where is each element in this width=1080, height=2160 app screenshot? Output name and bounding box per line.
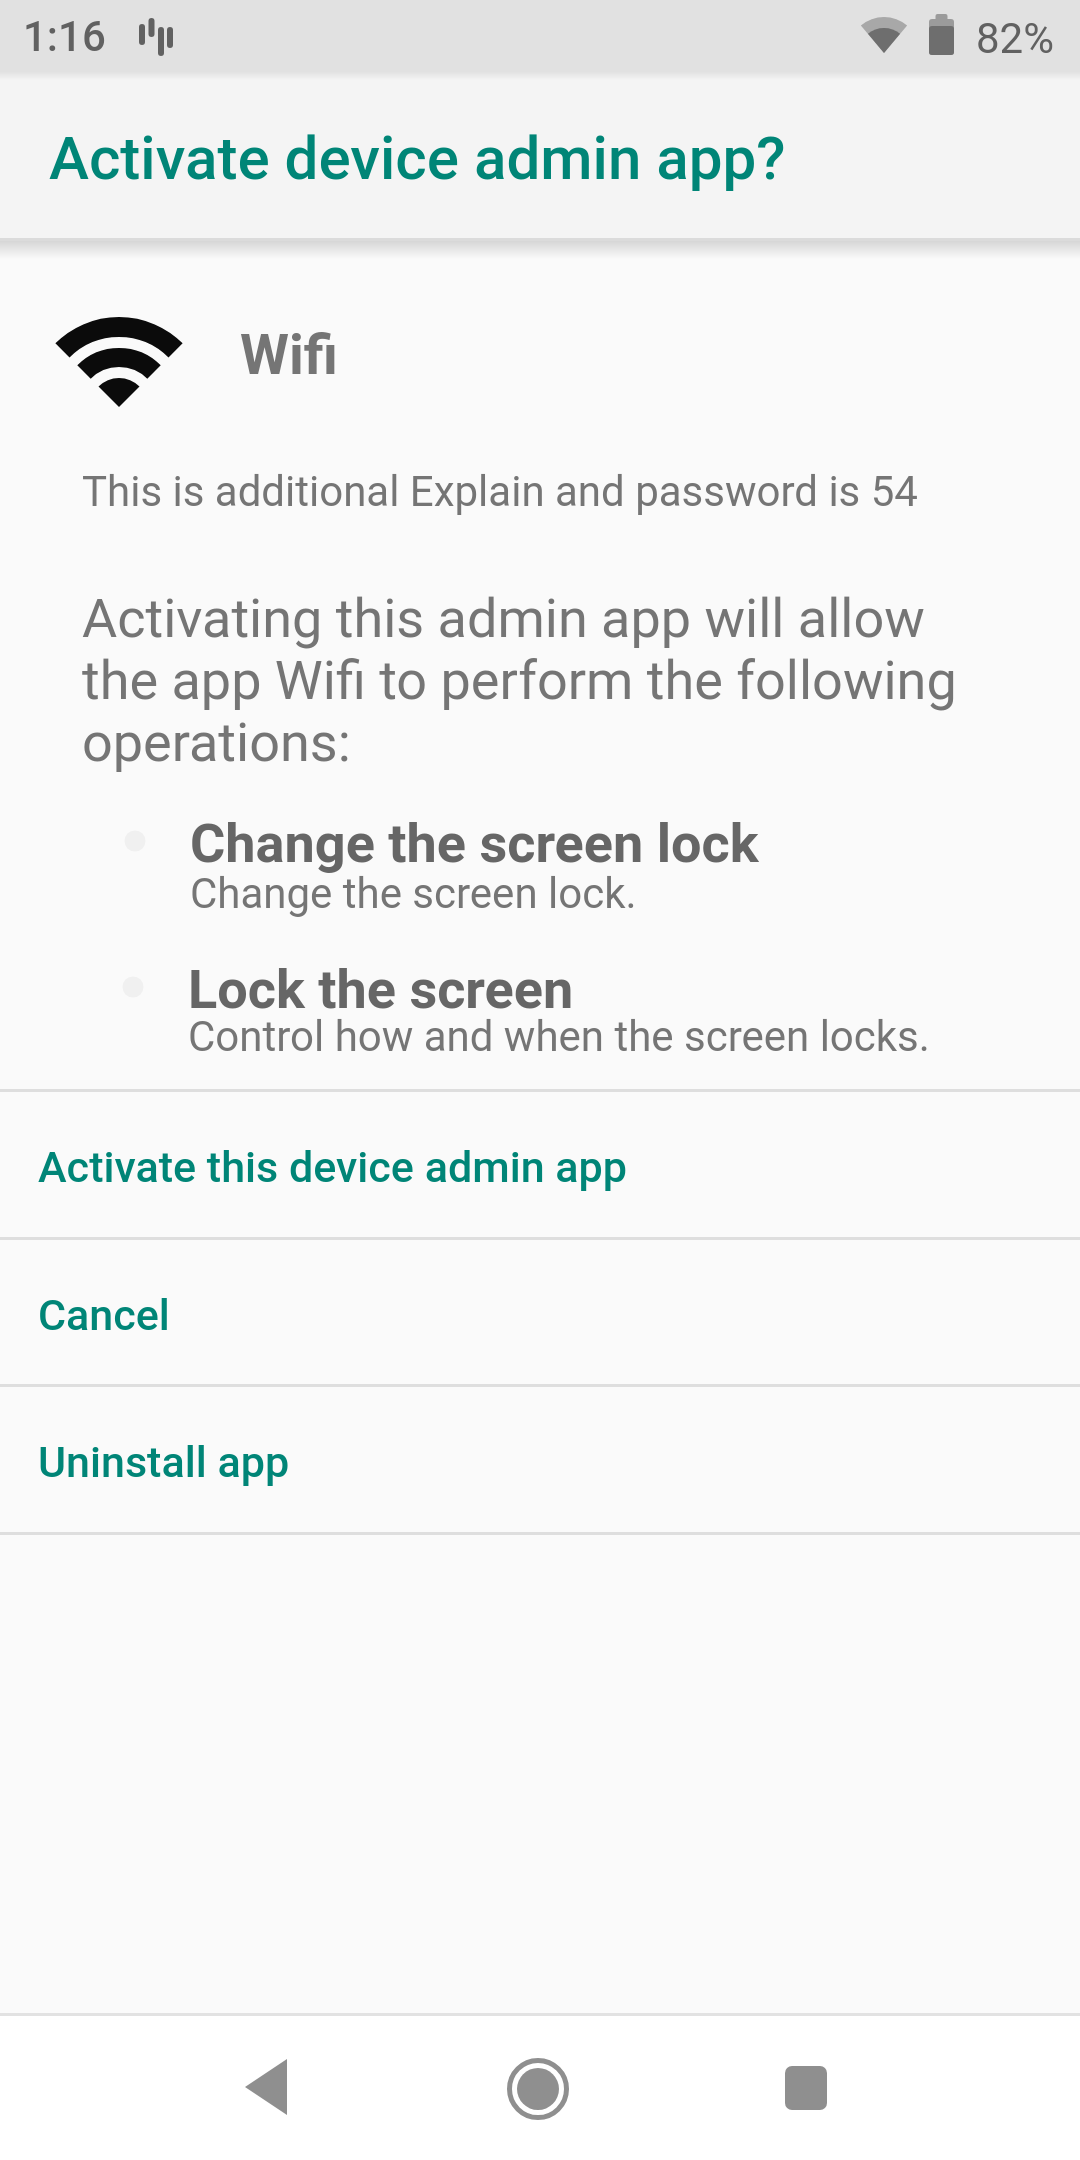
staticText: Activate device admin app? — [49, 123, 786, 193]
staticText: Change the screen lock. — [190, 869, 637, 918]
staticText: This is additional Explain and password … — [82, 467, 918, 516]
button[interactable]: Cancel — [0, 1240, 1080, 1384]
staticText: Control how and when the screen locks. — [188, 1012, 930, 1061]
staticText: Lock the screen — [188, 958, 574, 1021]
staticText: the app Wifi to perform the following — [82, 649, 957, 712]
staticText: Cancel — [38, 1290, 170, 1340]
staticText: 1:16 — [23, 12, 106, 61]
staticText: operations: — [82, 711, 351, 774]
staticText: Wifi — [240, 322, 338, 388]
staticText: Activating this admin app will allow — [82, 587, 925, 650]
staticText: 82% — [976, 14, 1054, 63]
button[interactable]: Activate this device admin app — [0, 1092, 1080, 1237]
staticText: Change the screen lock — [190, 812, 759, 875]
button[interactable] — [750, 2030, 865, 2145]
button[interactable] — [210, 2030, 325, 2145]
button[interactable] — [480, 2030, 595, 2145]
staticText: Activate this device admin app — [38, 1142, 627, 1192]
staticText: Uninstall app — [38, 1437, 290, 1487]
button[interactable]: Uninstall app — [0, 1387, 1080, 1532]
